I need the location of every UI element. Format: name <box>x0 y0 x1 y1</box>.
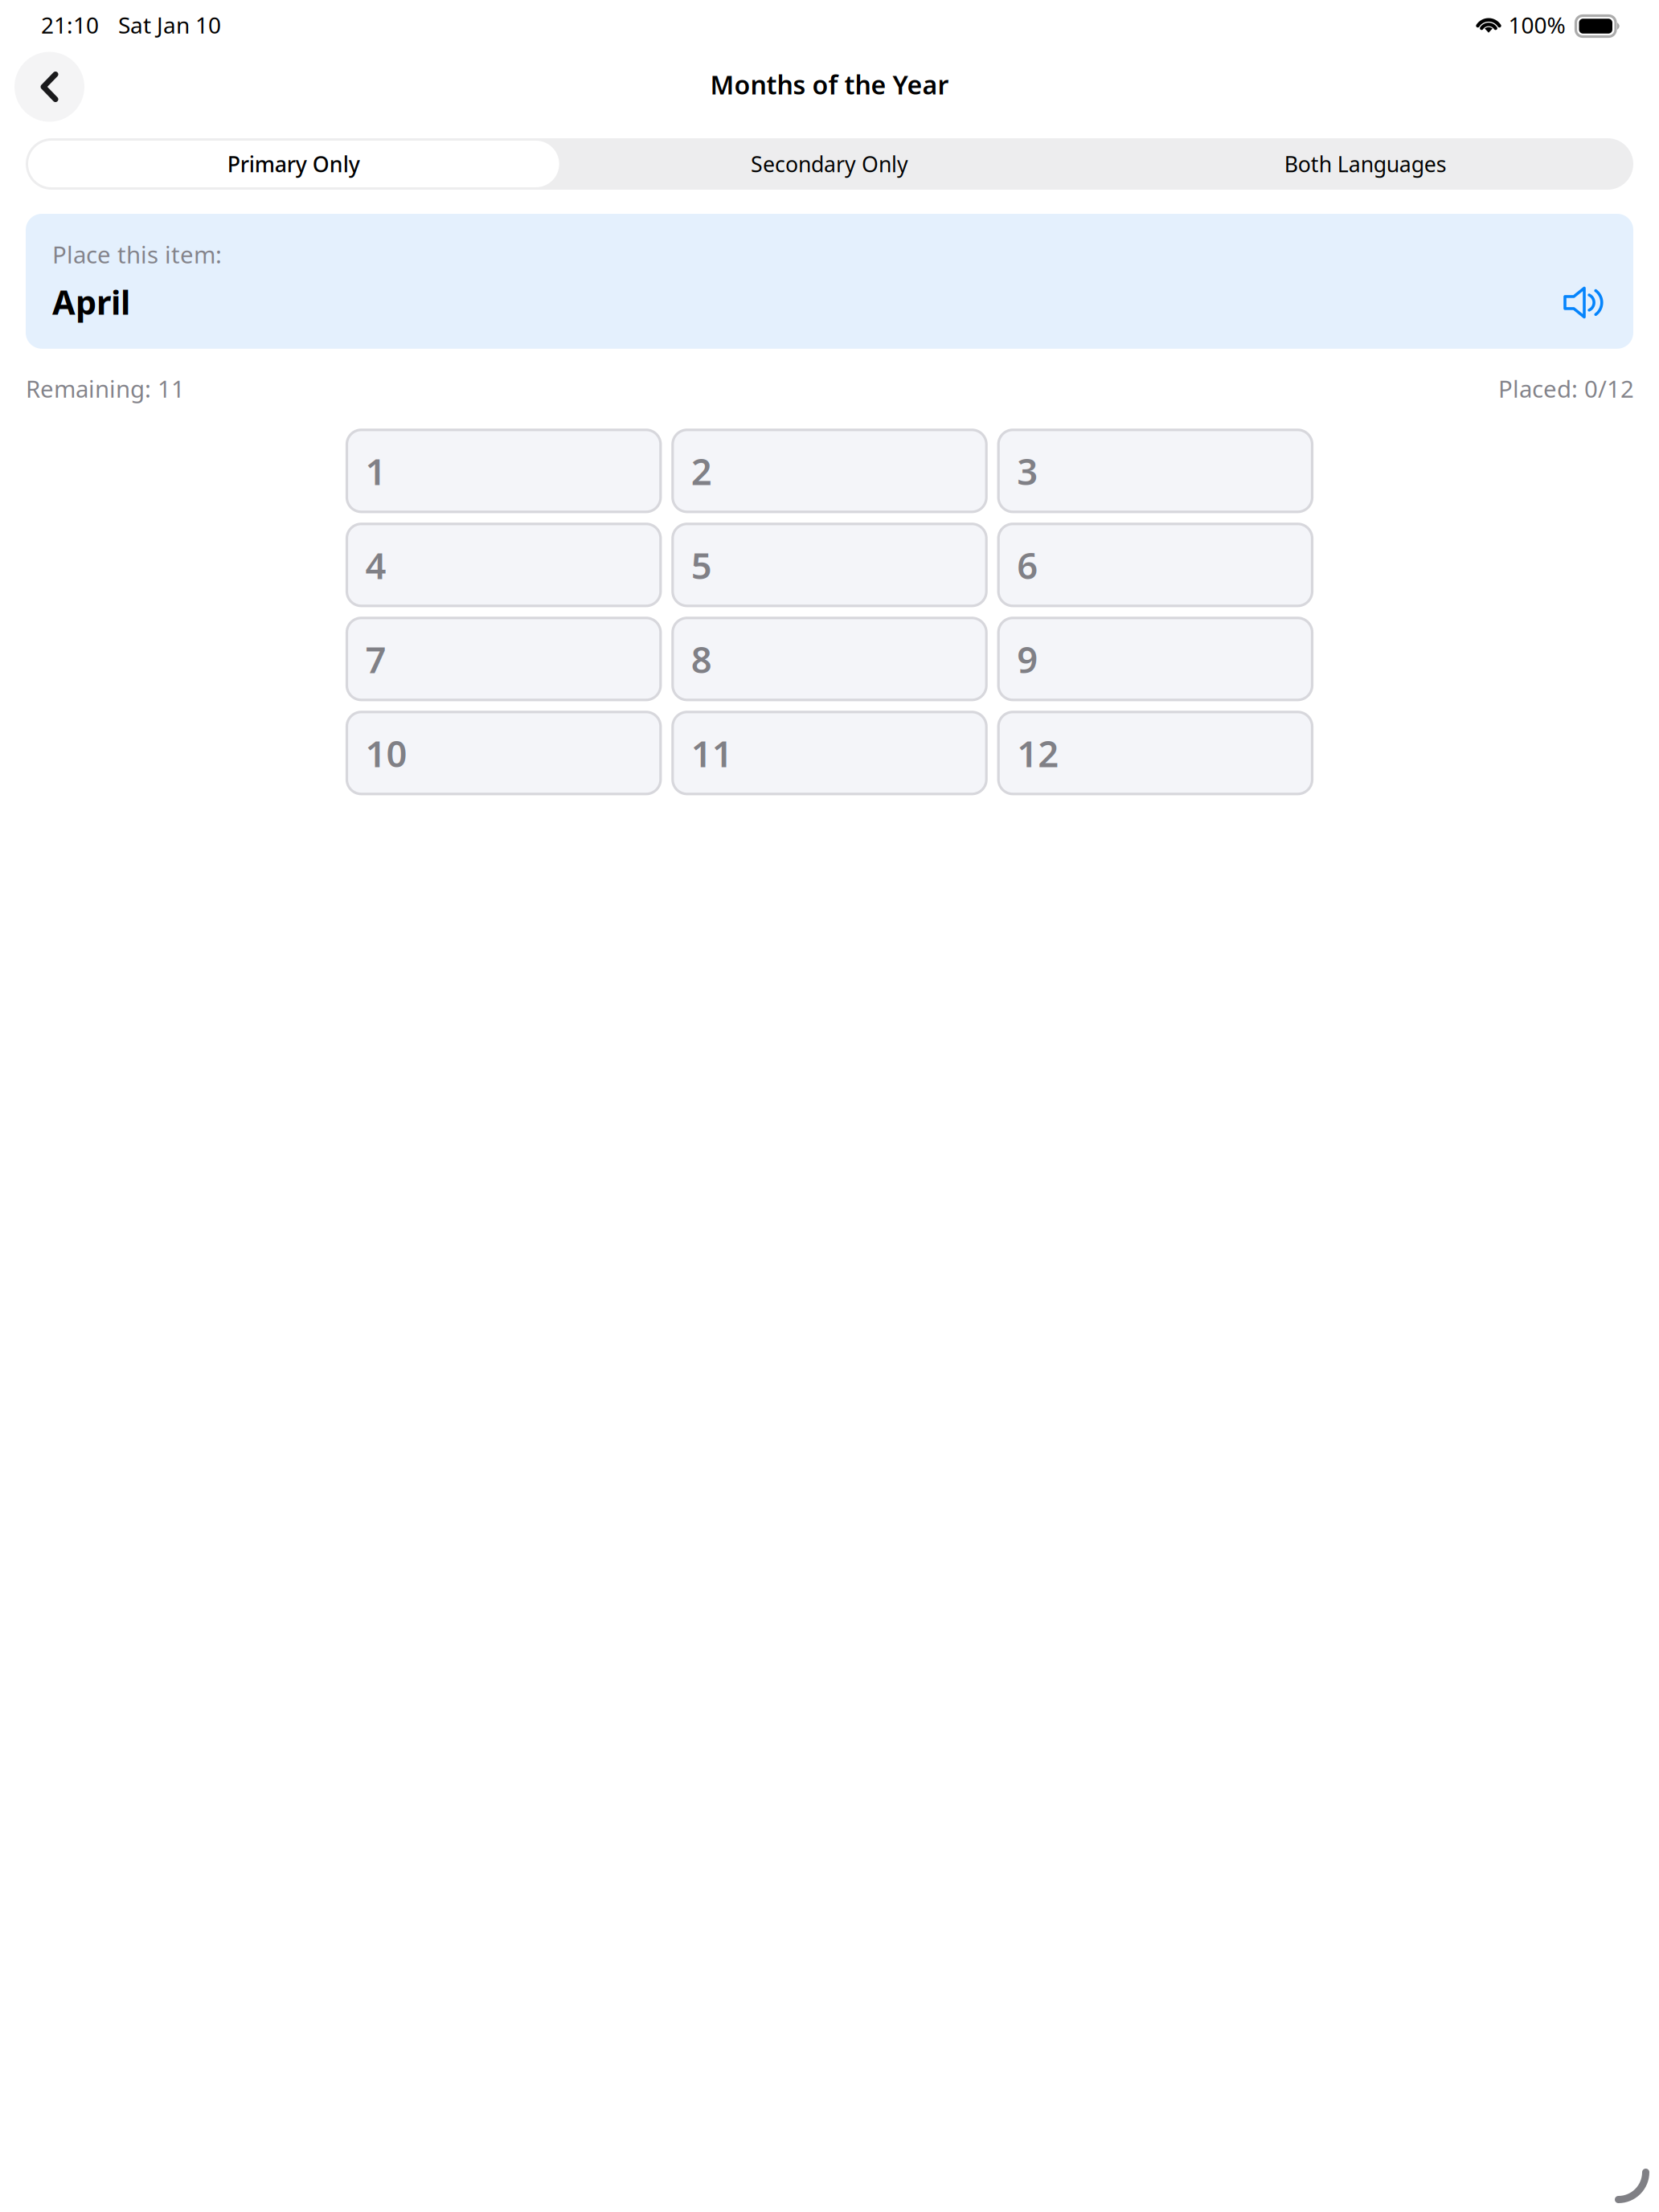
staticText: Both Languages <box>1284 150 1447 178</box>
button[interactable]: 10 <box>347 712 661 794</box>
button[interactable]: 12 <box>998 712 1312 794</box>
staticText: Place this item: <box>52 239 222 270</box>
staticText: Months of the Year <box>710 67 949 102</box>
staticText: 8 <box>691 635 712 683</box>
staticText: 7 <box>365 635 386 683</box>
staticText: Remaining: 11 <box>26 373 185 404</box>
button[interactable]: 6 <box>998 524 1312 606</box>
button[interactable]: Play pronunciation <box>1563 286 1602 319</box>
staticText: Secondary Only <box>751 150 908 178</box>
staticText: 100% <box>1508 10 1565 40</box>
staticText: 5 <box>691 541 712 589</box>
button[interactable]: 3 <box>998 430 1312 512</box>
staticText: 3 <box>1017 447 1038 495</box>
staticText: Sat Jan 10 <box>118 10 221 40</box>
staticText: 9 <box>1017 635 1038 683</box>
staticText: 10 <box>365 729 407 777</box>
button[interactable]: Both Languages <box>1097 138 1633 190</box>
staticText: 11 <box>691 729 733 777</box>
button[interactable]: Primary Only <box>26 138 562 190</box>
button[interactable]: 5 <box>673 524 986 606</box>
staticText: 1 <box>365 447 386 495</box>
staticText: 12 <box>1017 729 1059 777</box>
staticText: 21:10 <box>41 10 99 40</box>
button[interactable]: 7 <box>347 618 661 700</box>
button[interactable]: 11 <box>673 712 986 794</box>
staticText: 6 <box>1017 541 1038 589</box>
button[interactable]: 9 <box>998 618 1312 700</box>
button[interactable]: 8 <box>673 618 986 700</box>
button[interactable]: Back <box>14 52 84 122</box>
button[interactable]: 4 <box>347 524 661 606</box>
button[interactable]: 2 <box>673 430 986 512</box>
button[interactable]: 1 <box>347 430 661 512</box>
staticText: Primary Only <box>227 150 360 178</box>
button[interactable]: Secondary Only <box>562 138 1097 190</box>
staticText: 4 <box>365 541 386 589</box>
staticText: April <box>52 280 130 324</box>
staticText: 2 <box>691 447 712 495</box>
staticText: Placed: 0/12 <box>1498 373 1634 404</box>
